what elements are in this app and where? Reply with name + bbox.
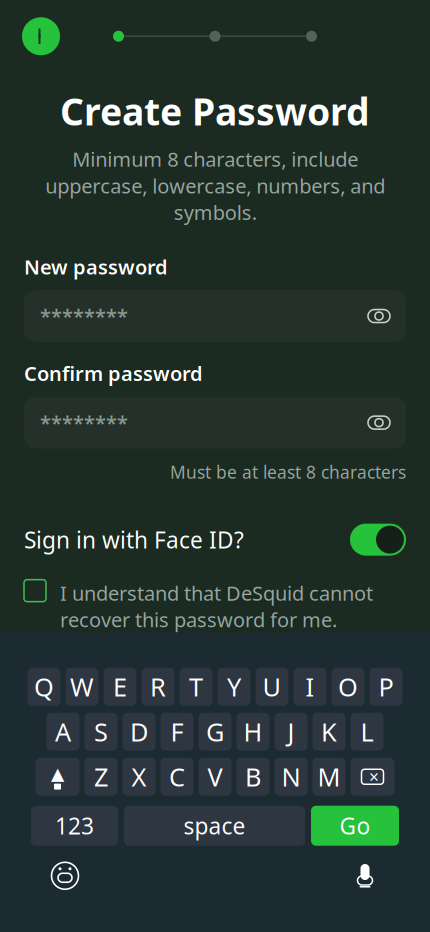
staticText: Minimum 8 characters, include uppercase,… <box>45 146 385 225</box>
button[interactable]: Go <box>311 806 399 846</box>
staticText: × <box>369 765 379 788</box>
staticText: Confirm password <box>24 360 203 387</box>
button[interactable]: G <box>198 713 231 751</box>
button[interactable]: B <box>236 758 269 796</box>
staticText: P <box>378 670 393 703</box>
staticText: G <box>206 715 224 748</box>
button[interactable]: F <box>160 713 193 751</box>
staticText: space <box>183 811 245 841</box>
button[interactable]: A <box>46 713 79 751</box>
button[interactable]: J <box>274 713 307 751</box>
staticText: Q <box>34 670 54 703</box>
button[interactable]: I <box>293 668 326 706</box>
button[interactable]: X <box>122 758 155 796</box>
staticText: New password <box>24 253 168 280</box>
staticText: I <box>305 670 314 703</box>
staticText: I understand that DeSquid cannot recover… <box>60 580 373 633</box>
staticText: M <box>317 760 340 793</box>
button[interactable]: Sign in with Face ID? <box>0 512 430 568</box>
staticText: E <box>113 670 127 703</box>
button[interactable]: C <box>160 758 193 796</box>
button[interactable]: Dictation <box>345 856 385 896</box>
button[interactable]: L <box>350 713 383 751</box>
staticText: B <box>245 760 261 793</box>
button[interactable]: Delete <box>350 758 394 796</box>
button[interactable]: K <box>312 713 345 751</box>
button[interactable]: space <box>124 806 305 846</box>
button[interactable]: R <box>141 668 174 706</box>
button[interactable]: H <box>236 713 269 751</box>
button[interactable]: O <box>331 668 364 706</box>
staticText: Z <box>94 760 108 793</box>
button[interactable]: E <box>103 668 136 706</box>
staticText: H <box>243 715 262 748</box>
button[interactable]: U <box>255 668 288 706</box>
staticText: Sign in with Face ID? <box>24 525 244 555</box>
staticText: V <box>207 760 222 793</box>
button[interactable]: M <box>312 758 345 796</box>
staticText: J <box>287 715 294 748</box>
button[interactable]: Shift <box>35 758 79 796</box>
button[interactable]: Emoji <box>45 856 85 896</box>
staticText: U <box>262 670 281 703</box>
staticText: D <box>130 715 148 748</box>
button[interactable]: S <box>84 713 117 751</box>
staticText: K <box>321 715 337 748</box>
staticText: O <box>338 670 358 703</box>
button[interactable]: Back <box>22 17 60 55</box>
staticText: ******** <box>40 409 128 436</box>
button[interactable]: Q <box>27 668 60 706</box>
staticText: A <box>55 715 71 748</box>
button[interactable]: P <box>369 668 402 706</box>
staticText: ▲ <box>51 764 64 784</box>
staticText: W <box>70 670 94 703</box>
button[interactable]: W <box>65 668 98 706</box>
staticText: L <box>360 715 373 748</box>
staticText: Y <box>227 670 241 703</box>
button[interactable]: T <box>179 668 212 706</box>
staticText: R <box>150 670 166 703</box>
staticText: C <box>169 760 185 793</box>
button[interactable]: N <box>274 758 307 796</box>
staticText: X <box>131 760 146 793</box>
staticText: Create Password <box>60 86 370 136</box>
button[interactable]: Z <box>84 758 117 796</box>
staticText: 123 <box>55 811 94 841</box>
staticText: T <box>189 670 203 703</box>
staticText: N <box>281 760 300 793</box>
staticText: F <box>170 715 183 748</box>
button[interactable]: V <box>198 758 231 796</box>
staticText: Go <box>339 811 370 841</box>
staticText: S <box>94 715 108 748</box>
button[interactable]: I understand that DeSquid cannot recover… <box>0 576 430 633</box>
staticText: ******** <box>40 303 128 329</box>
button[interactable]: Y <box>217 668 250 706</box>
button[interactable]: 123 <box>31 806 118 846</box>
staticText: Must be at least 8 characters <box>170 461 406 484</box>
button[interactable]: Show password <box>362 299 396 333</box>
button[interactable]: D <box>122 713 155 751</box>
button[interactable]: Show password <box>362 406 396 440</box>
